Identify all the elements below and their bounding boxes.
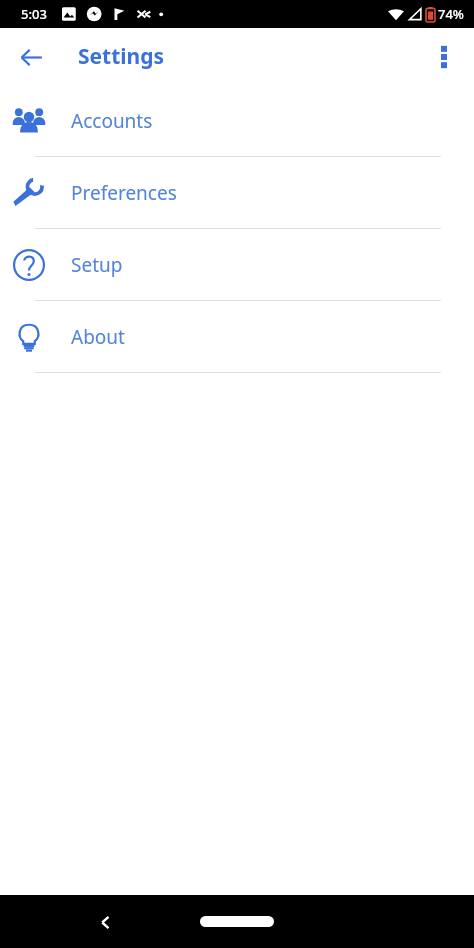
button[interactable]: About — [0, 301, 474, 372]
button[interactable]: Home — [200, 916, 274, 927]
staticText: Settings — [78, 42, 165, 71]
button[interactable]: Setup — [0, 229, 474, 300]
button[interactable]: Accounts — [0, 85, 474, 156]
staticText: Setup — [71, 252, 123, 278]
staticText: 74% — [438, 5, 464, 23]
staticText: Preferences — [71, 180, 177, 206]
button[interactable]: Preferences — [0, 157, 474, 228]
button[interactable]: More options — [420, 33, 468, 81]
button[interactable]: Back — [82, 899, 128, 945]
staticText: Accounts — [71, 108, 153, 134]
staticText: 5:03 — [21, 5, 47, 23]
staticText: About — [71, 324, 125, 350]
button[interactable]: Back — [7, 33, 55, 81]
